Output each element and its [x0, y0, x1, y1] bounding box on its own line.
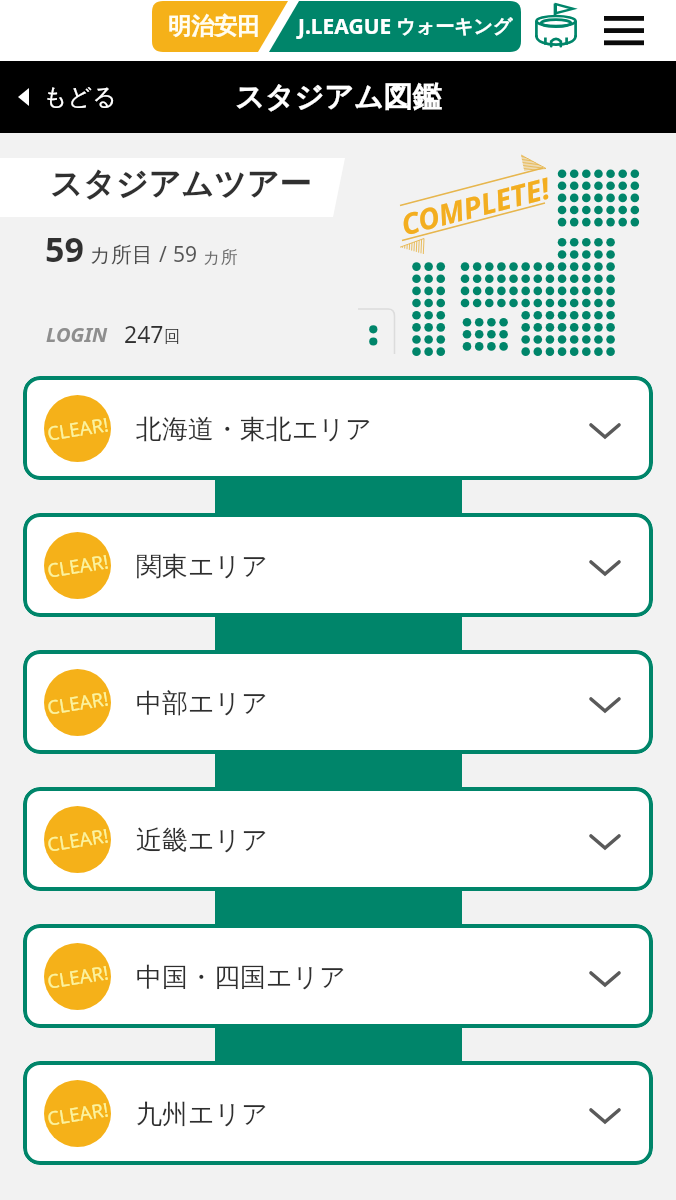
- button[interactable]: CLEAR!: [23, 513, 653, 617]
- staticText: 北海道・東北エリア: [136, 413, 372, 446]
- staticText: 回: [164, 327, 180, 347]
- staticText: CLEAR!: [45, 685, 111, 721]
- staticText: 九州エリア: [136, 1098, 268, 1131]
- staticText: 中国・四国エリア: [136, 961, 346, 994]
- staticText: ウォーキング: [396, 15, 513, 39]
- button[interactable]: CLEAR!: [23, 787, 653, 891]
- staticText: 明治安田: [168, 12, 260, 41]
- staticText: 中部エリア: [136, 687, 268, 720]
- staticText: 59: [173, 240, 203, 269]
- button[interactable]: CLEAR!: [23, 924, 653, 1028]
- staticText: CLEAR!: [45, 411, 111, 447]
- staticText: LOGIN: [46, 321, 108, 348]
- button[interactable]: Back: [18, 61, 117, 133]
- staticText: カ所目: [84, 240, 159, 269]
- staticText: スタジアム図鑑: [235, 79, 442, 116]
- staticText: J.LEAGUE: [298, 12, 392, 41]
- button[interactable]: CLEAR!: [23, 1061, 653, 1165]
- button[interactable]: 明治安田: [152, 1, 521, 52]
- staticText: もどる: [43, 82, 117, 112]
- staticText: CLEAR!: [45, 1096, 111, 1132]
- button[interactable]: Menu: [594, 3, 654, 58]
- staticText: CLEAR!: [45, 959, 111, 995]
- staticText: カ所: [203, 247, 238, 268]
- staticText: 近畿エリア: [136, 824, 268, 857]
- staticText: 59: [45, 226, 84, 272]
- staticText: 247: [124, 318, 164, 349]
- staticText: /: [159, 240, 173, 269]
- staticText: CLEAR!: [45, 548, 111, 584]
- staticText: 関東エリア: [136, 550, 268, 583]
- staticText: スタジアムツアー: [50, 164, 312, 204]
- staticText: COMPLETE!: [397, 168, 554, 243]
- button[interactable]: CLEAR!: [23, 376, 653, 480]
- staticText: CLEAR!: [45, 822, 111, 858]
- button[interactable]: Stadium: [535, 3, 577, 49]
- button[interactable]: CLEAR!: [23, 650, 653, 754]
